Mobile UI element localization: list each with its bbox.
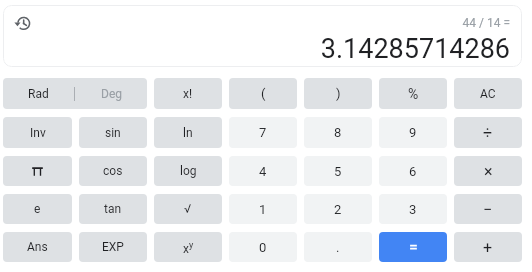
staticText: Rad [28,87,49,101]
staticText: ÷ [483,123,493,142]
staticText: + [483,238,493,257]
staticText: 6 [409,164,417,179]
button[interactable]: 8 [304,117,372,148]
staticText: = [409,238,418,257]
staticText: 7 [259,125,267,140]
staticText: AC [480,87,496,101]
button[interactable]: xy [154,232,222,262]
button[interactable]: 7 [229,117,297,148]
staticText: ( [261,86,266,101]
button[interactable]: EXP [79,232,147,262]
button[interactable]: tan [79,194,147,224]
staticText: x! [183,87,193,101]
button[interactable]: % [379,78,447,109]
button[interactable]: Rad [3,78,147,109]
button[interactable]: − [454,194,522,224]
staticText: 1 [259,202,267,217]
button[interactable]: 4 [229,156,297,186]
button[interactable]: 2 [304,194,372,224]
button[interactable]: ÷ [454,117,522,148]
button[interactable]: x! [154,78,222,109]
button[interactable]: cos [79,156,147,186]
button[interactable] [3,156,72,186]
staticText: e [34,202,41,216]
staticText: xy [183,240,194,255]
button[interactable]: ln [154,117,222,148]
staticText: EXP [102,240,124,254]
button[interactable]: sin [79,117,147,148]
button[interactable]: 9 [379,117,447,148]
button[interactable]: = [379,232,447,262]
staticText: Ans [27,240,48,254]
button[interactable]: Ans [3,232,72,262]
button[interactable]: ) [304,78,372,109]
button[interactable]: 6 [379,156,447,186]
button[interactable]: 3 [379,194,447,224]
staticText: Deg [101,87,122,101]
staticText: % [408,86,419,102]
button[interactable]: log [154,156,222,186]
button[interactable]: e [3,194,72,224]
staticText: log [180,164,197,178]
staticText: 2 [334,202,342,217]
staticText: 3 [409,202,417,217]
button[interactable]: 1 [229,194,297,224]
staticText: 8 [334,125,342,140]
staticText: 9 [409,125,417,140]
staticText: 44 / 14 = [462,16,510,30]
staticText: cos [103,164,123,178]
staticText: 5 [334,164,342,179]
staticText: ln [183,126,193,140]
staticText: tan [104,202,122,216]
staticText: Inv [30,126,46,140]
staticText: √ [184,202,192,216]
staticText: 4 [259,164,267,179]
button[interactable]: . [304,232,372,262]
staticText: sin [105,126,121,140]
button[interactable]: History [12,12,35,35]
button[interactable]: + [454,232,522,262]
button[interactable]: √ [154,194,222,224]
staticText: × [484,162,493,181]
button[interactable]: Inv [3,117,72,148]
staticText: − [483,200,493,219]
staticText: ) [336,86,341,101]
button[interactable]: × [454,156,522,186]
staticText: 0 [259,240,267,255]
staticText: 3.14285714286 [320,33,510,65]
staticText: . [336,240,340,255]
button[interactable]: AC [454,78,522,109]
button[interactable]: 5 [304,156,372,186]
button[interactable]: ( [229,78,297,109]
button[interactable]: 0 [229,232,297,262]
